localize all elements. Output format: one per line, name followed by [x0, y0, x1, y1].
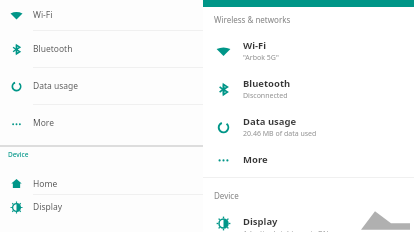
- staticText: Display: [243, 215, 278, 228]
- button[interactable]: Wi-Fi: [203, 38, 414, 64]
- button[interactable]: Data usage: [203, 114, 414, 140]
- staticText: 20.46 MB of data used: [243, 129, 317, 139]
- staticText: Data usage: [33, 80, 79, 92]
- staticText: Bluetooth: [243, 77, 291, 90]
- button[interactable]: More: [0, 105, 203, 141]
- button[interactable]: Display: [203, 215, 414, 232]
- button[interactable]: Wi-Fi: [0, 0, 203, 30]
- staticText: More: [33, 117, 54, 129]
- button[interactable]: Display: [0, 195, 203, 219]
- other: Pointer: [360, 209, 410, 232]
- staticText: More: [243, 153, 268, 166]
- staticText: "Arbok 5G": [243, 53, 279, 63]
- staticText: Device: [214, 190, 239, 201]
- button[interactable]: Home: [0, 173, 203, 194]
- staticText: Disconnected: [243, 91, 288, 101]
- staticText: Display: [33, 201, 62, 213]
- staticText: Adaptive brightness is ON: [243, 229, 329, 232]
- button[interactable]: Data usage: [0, 68, 203, 104]
- staticText: Wireless & networks: [214, 14, 291, 25]
- button[interactable]: Bluetooth: [203, 76, 414, 102]
- staticText: Wi-Fi: [33, 9, 53, 21]
- staticText: Wi-Fi: [243, 39, 267, 52]
- staticText: Device: [8, 150, 29, 159]
- button[interactable]: Bluetooth: [0, 31, 203, 67]
- staticText: Bluetooth: [33, 43, 73, 55]
- staticText: Data usage: [243, 115, 297, 128]
- staticText: Home: [33, 178, 58, 190]
- button[interactable]: More: [203, 148, 414, 170]
